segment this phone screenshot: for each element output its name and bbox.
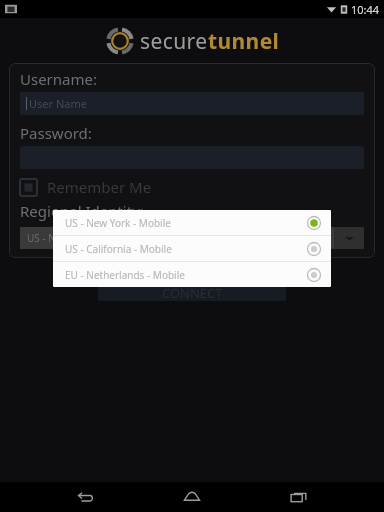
staticText: US - New York - Mobile bbox=[27, 231, 133, 245]
staticText: Remember Me bbox=[47, 177, 152, 197]
button[interactable]: Remember Me bbox=[20, 177, 152, 197]
button[interactable]: Back bbox=[63, 482, 107, 512]
staticText: CONNECT bbox=[162, 284, 223, 301]
button[interactable]: Home bbox=[170, 482, 214, 512]
staticText: 10:44 bbox=[351, 2, 380, 17]
staticText: EU - Netherlands - Mobile bbox=[65, 268, 307, 282]
staticText: Password: bbox=[20, 123, 92, 143]
staticText: US - California - Mobile bbox=[65, 242, 307, 256]
button[interactable]: CONNECT bbox=[98, 284, 286, 301]
staticText: Username: bbox=[20, 69, 97, 89]
staticText: tunnel bbox=[208, 27, 280, 56]
staticText: Regional Identity: bbox=[20, 201, 144, 221]
button[interactable]: User Name bbox=[20, 92, 364, 115]
staticText: User Name bbox=[29, 96, 87, 111]
button[interactable]: Recent apps bbox=[277, 482, 321, 512]
button[interactable]: US - California - Mobile bbox=[53, 236, 331, 261]
staticText: secure bbox=[140, 27, 208, 56]
staticText: US - New York - Mobile bbox=[65, 216, 307, 230]
button[interactable]: EU - Netherlands - Mobile bbox=[53, 262, 331, 287]
button[interactable]: US - New York - Mobile bbox=[53, 210, 331, 235]
button[interactable]: US - New York - Mobile bbox=[20, 227, 364, 249]
